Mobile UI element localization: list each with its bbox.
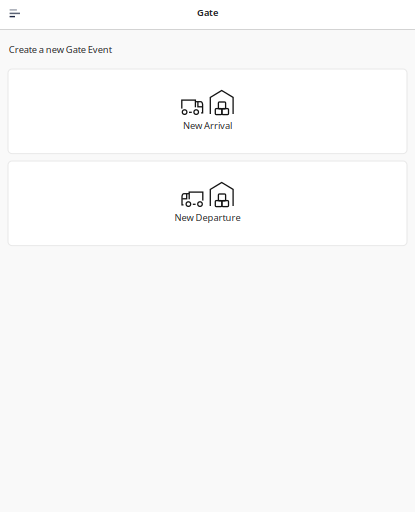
staticText: Create a new Gate Event [9, 43, 112, 56]
staticText: Gate [197, 6, 218, 19]
button[interactable]: Menu [0, 0, 28, 27]
staticText: New Departure [174, 211, 240, 224]
button[interactable]: New Departure [8, 161, 407, 246]
staticText: New Arrival [183, 119, 232, 132]
button[interactable]: New Arrival [8, 69, 407, 154]
